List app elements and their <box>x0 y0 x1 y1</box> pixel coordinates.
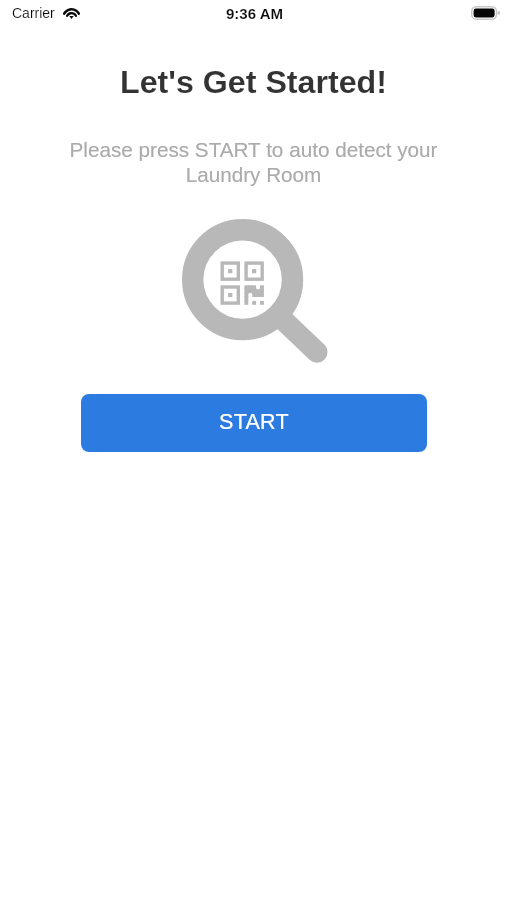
staticText: Please press START to auto detect your L… <box>56 138 451 187</box>
other: Wi-Fi <box>62 7 81 19</box>
staticText: Carrier <box>12 5 55 21</box>
staticText: Let's Get Started! <box>0 64 507 100</box>
staticText: START <box>219 410 289 434</box>
staticText: 9:36 AM <box>226 5 283 22</box>
other: Scan QR code <box>182 219 327 361</box>
other: Battery <box>471 6 500 20</box>
button[interactable]: START <box>81 394 427 452</box>
